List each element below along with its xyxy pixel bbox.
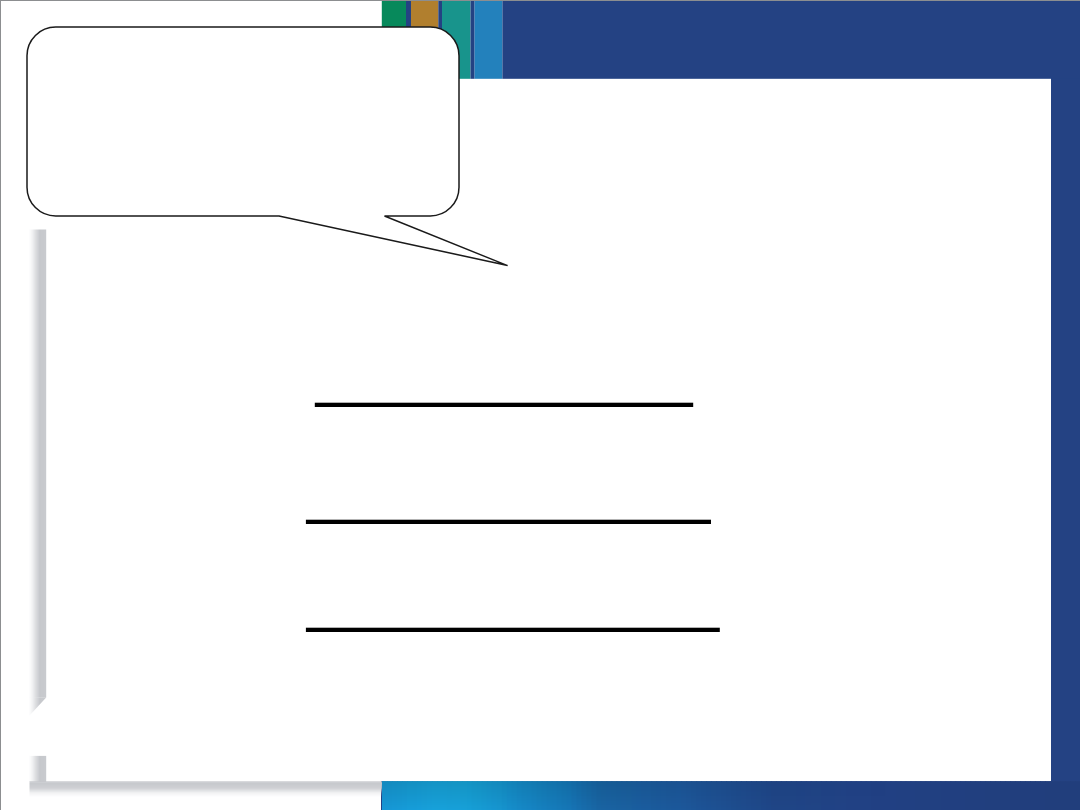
button[interactable]: Blank line two (306, 505, 711, 537)
button[interactable]: Callout note (27, 27, 459, 215)
button[interactable]: Blank line three (306, 613, 720, 645)
button[interactable]: Blank line one (306, 388, 694, 420)
